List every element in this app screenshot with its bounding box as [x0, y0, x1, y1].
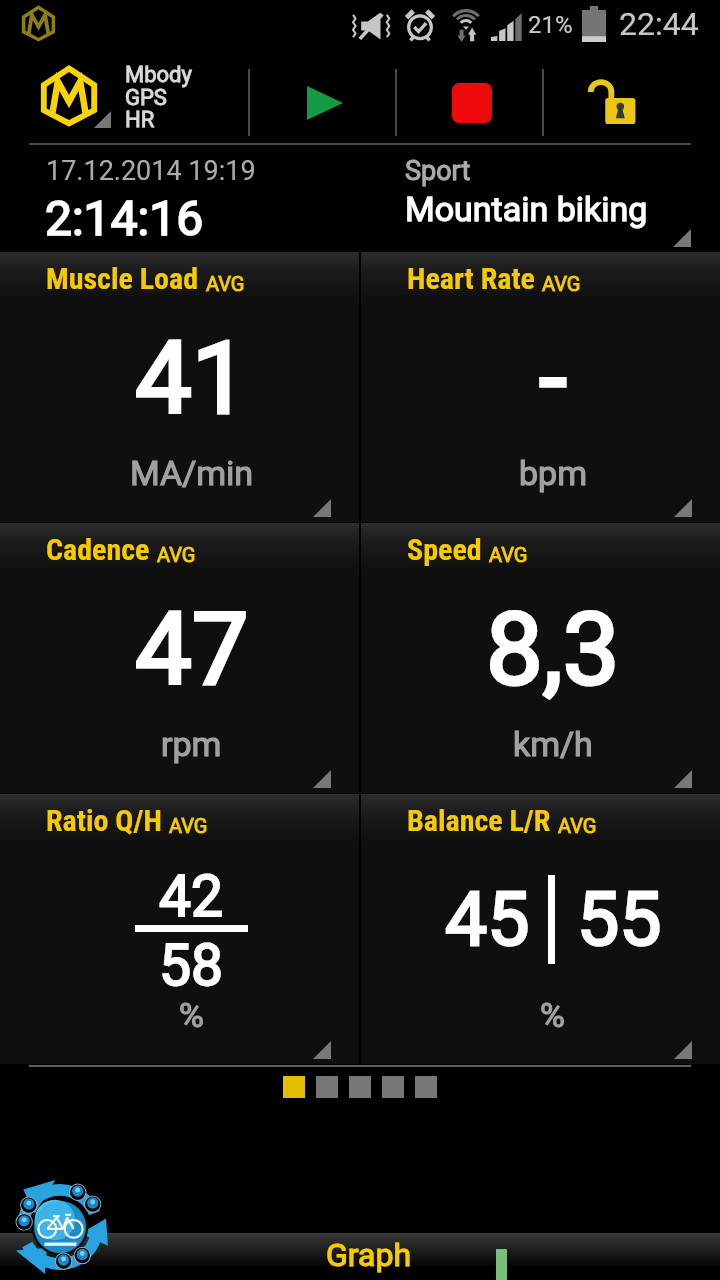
staticText: Ratio Q/H	[46, 803, 162, 838]
staticText: Heart Rate	[407, 261, 535, 296]
button[interactable]: Unlock	[544, 54, 720, 151]
button[interactable]: Start	[250, 54, 395, 151]
staticText: AVG	[157, 543, 196, 566]
staticText: Graph	[326, 1236, 412, 1274]
staticText: 8,3	[486, 590, 620, 708]
staticText: AVG	[169, 814, 208, 837]
button[interactable]: Ratio Q/H	[0, 794, 359, 1064]
button[interactable]: Cadence	[0, 523, 359, 793]
staticText: Speed	[407, 532, 482, 567]
staticText: %	[540, 995, 565, 1035]
staticText: 42	[159, 863, 224, 930]
staticText: MA/min	[130, 453, 254, 493]
staticText: 22:44	[619, 5, 699, 43]
staticText: 41	[135, 319, 249, 437]
staticText: 58	[159, 932, 224, 999]
staticText: AVG	[206, 272, 245, 295]
staticText: 21%	[528, 11, 573, 39]
staticText: 55	[577, 875, 662, 963]
button[interactable]: Mbody	[0, 54, 248, 151]
staticText: HR	[125, 107, 155, 133]
staticText: %	[179, 995, 204, 1035]
staticText: Balance L/R	[407, 803, 551, 838]
button[interactable]: Stop	[397, 54, 542, 151]
staticText: AVG	[558, 814, 597, 837]
staticText: GPS	[125, 85, 167, 111]
staticText: AVG	[542, 272, 581, 295]
staticText: 17.12.2014 19:19	[46, 155, 256, 187]
button[interactable]: Balance L/R	[361, 794, 720, 1064]
button[interactable]: Graph	[326, 1236, 412, 1274]
button[interactable]: 17.12.2014 19:19	[0, 145, 360, 252]
staticText: 47	[135, 590, 249, 708]
staticText: -	[539, 319, 567, 437]
staticText: Mbody	[125, 62, 192, 88]
button[interactable]: Sport	[360, 145, 720, 252]
button[interactable]: Muscle Load	[0, 252, 359, 522]
staticText: 45	[445, 875, 530, 963]
staticText: km/h	[513, 724, 593, 764]
staticText: Mountain biking	[405, 189, 648, 229]
staticText: AVG	[489, 543, 528, 566]
staticText: 2:14:16	[45, 190, 204, 246]
staticText: Cadence	[46, 532, 150, 567]
staticText: bpm	[519, 453, 587, 493]
staticText: Sport	[405, 155, 471, 187]
button[interactable]: Heart Rate	[361, 252, 720, 522]
staticText: rpm	[161, 724, 222, 764]
button[interactable]: Speed	[361, 523, 720, 793]
staticText: Muscle Load	[46, 261, 199, 296]
